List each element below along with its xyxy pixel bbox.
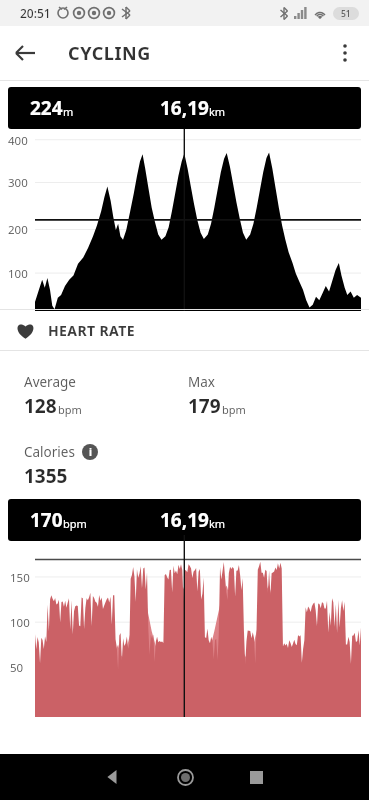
staticText: 16,19 <box>160 95 209 121</box>
button[interactable]: Back <box>0 28 50 78</box>
staticText: 20:51 <box>20 5 51 21</box>
staticText: Average <box>24 373 76 391</box>
staticText: bpm <box>222 402 246 417</box>
staticText: HEART RATE <box>48 321 135 340</box>
button[interactable]: Home <box>162 754 208 800</box>
staticText: m <box>63 104 74 119</box>
button[interactable]: More options <box>321 29 369 77</box>
staticText: i <box>89 445 92 459</box>
staticText: 51 <box>341 8 351 20</box>
staticText: 170 <box>30 507 63 533</box>
staticText: Max <box>188 373 215 391</box>
button[interactable]: Back <box>90 754 136 800</box>
staticText: bpm <box>58 402 82 417</box>
staticText: 16,19 <box>160 507 209 533</box>
button[interactable]: Calories info <box>82 444 98 460</box>
staticText: km <box>209 104 226 119</box>
staticText: 1355 <box>24 463 68 489</box>
staticText: 224 <box>30 95 63 121</box>
staticText: bpm <box>63 516 87 531</box>
staticText: 50 <box>10 660 24 676</box>
staticText: 128 <box>24 393 57 419</box>
button[interactable]: Recent apps <box>233 754 279 800</box>
staticText: 150 <box>10 570 30 586</box>
staticText: 100 <box>8 266 28 282</box>
staticText: 200 <box>8 222 28 238</box>
staticText: 400 <box>8 133 28 149</box>
staticText: CYCLING <box>68 41 151 66</box>
button[interactable]: HEART RATE <box>0 310 369 350</box>
staticText: Calories <box>24 443 75 461</box>
staticText: 179 <box>188 393 221 419</box>
staticText: 100 <box>10 615 30 631</box>
staticText: km <box>209 516 226 531</box>
staticText: 300 <box>8 175 28 191</box>
